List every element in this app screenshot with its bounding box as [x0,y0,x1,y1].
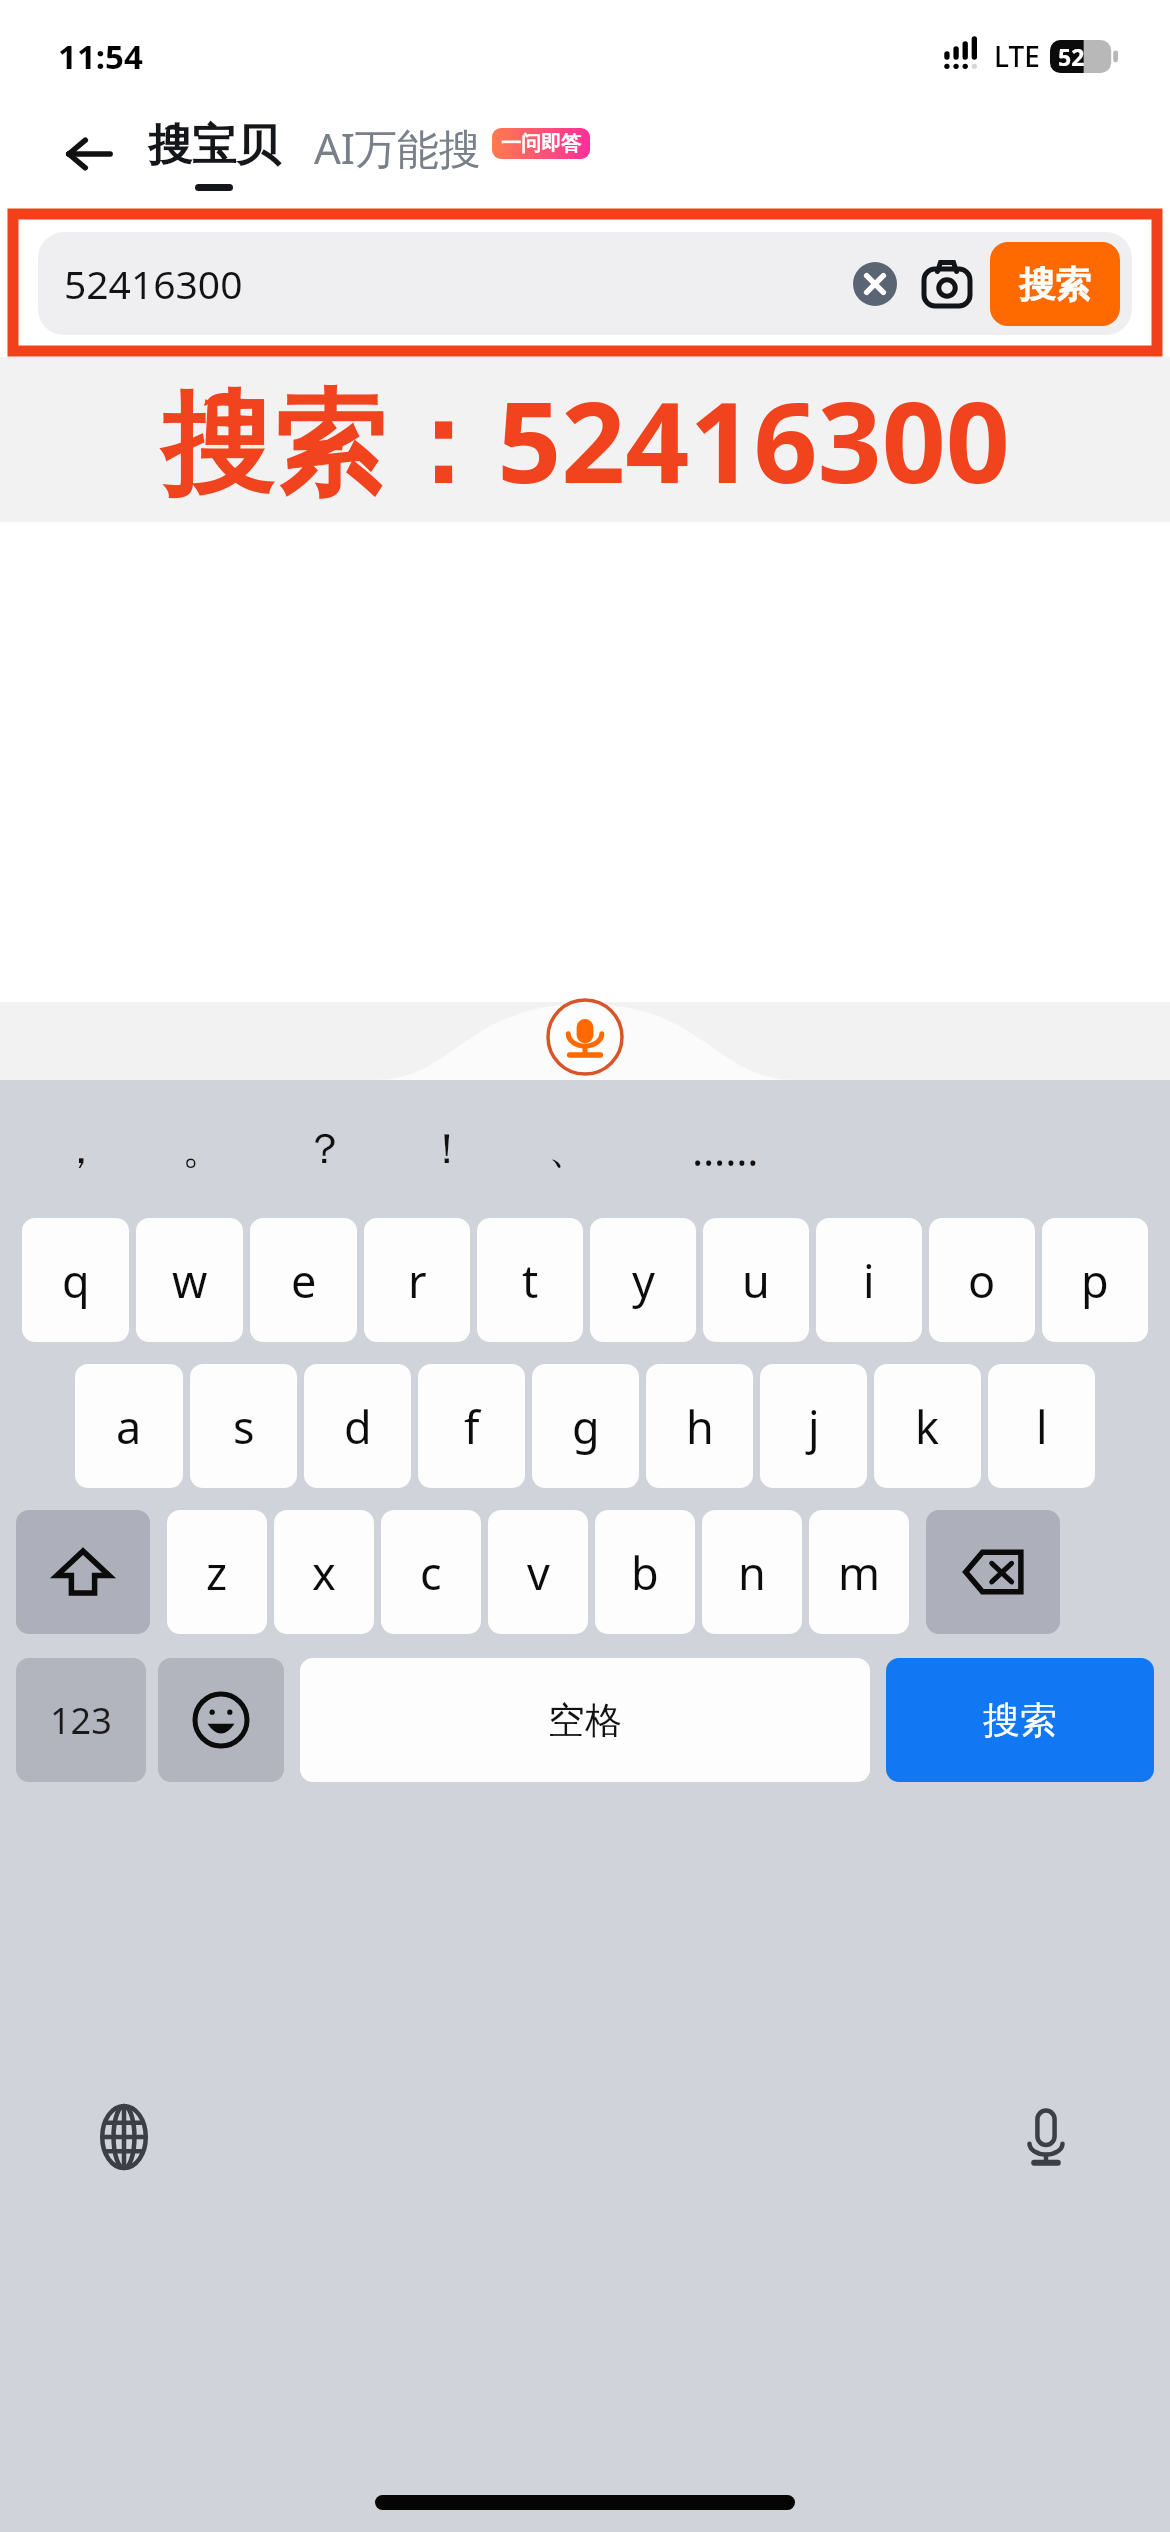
staticText: 123 [50,1696,112,1745]
button[interactable]: Emoji [158,1658,284,1782]
button[interactable]: Backspace [926,1510,1060,1634]
staticText: z [206,1542,228,1603]
button[interactable]: s [190,1364,297,1488]
button[interactable]: j [760,1364,867,1488]
button[interactable]: a [75,1364,183,1488]
button[interactable]: Switch language [84,2097,164,2177]
staticText: o [968,1250,996,1311]
button[interactable]: x [274,1510,374,1634]
button[interactable]: 空格 [300,1658,870,1782]
staticText: 搜宝贝 [148,118,280,173]
staticText: s [233,1396,255,1457]
button[interactable]: Shift [16,1510,150,1634]
button[interactable]: 搜索 [990,242,1120,326]
staticText: 、 [548,1123,590,1176]
staticText: 52 [1058,41,1085,72]
staticText: k [915,1396,940,1457]
button[interactable]: t [477,1218,583,1342]
staticText: 搜索 [983,1697,1057,1744]
button[interactable]: k [874,1364,981,1488]
staticText: y [632,1250,655,1311]
button[interactable]: m [809,1510,909,1634]
staticText: ， [60,1123,102,1176]
button[interactable]: l [988,1364,1095,1488]
button[interactable]: q [22,1218,129,1342]
button[interactable]: 一问即答 [501,131,581,156]
button[interactable]: b [595,1510,695,1634]
staticText: ！ [426,1123,468,1176]
button[interactable]: e [250,1218,357,1342]
staticText: 。 [182,1123,224,1176]
button[interactable]: ， [20,1080,142,1218]
button[interactable]: n [702,1510,802,1634]
button[interactable]: 123 [16,1658,146,1782]
staticText: l [1036,1396,1048,1457]
staticText: i [863,1250,875,1311]
staticText: 52416300 [64,257,848,310]
button[interactable]: Voice search [537,998,633,1076]
staticText: e [291,1250,317,1311]
button[interactable]: h [646,1364,753,1488]
staticText: 搜索：52416300 [161,363,1010,516]
staticText: j [808,1396,820,1457]
staticText: p [1081,1250,1109,1311]
staticText: ？ [304,1123,346,1176]
button[interactable]: f [418,1364,525,1488]
staticText: a [116,1396,142,1457]
staticText: v [527,1542,550,1603]
button[interactable]: Back [52,117,126,191]
staticText: 11:54 [58,34,143,79]
staticText: …… [692,1121,759,1178]
button[interactable]: 搜宝贝 [148,118,280,173]
button[interactable]: i [816,1218,922,1342]
staticText: g [572,1396,600,1457]
button[interactable]: 。 [142,1080,264,1218]
button[interactable]: Clear text [848,257,902,311]
button[interactable]: p [1042,1218,1148,1342]
staticText: 空格 [548,1697,622,1744]
staticText: d [344,1396,372,1457]
button[interactable]: Dictation [1006,2097,1086,2177]
button[interactable]: r [364,1218,470,1342]
staticText: h [686,1396,714,1457]
button[interactable]: AI万能搜 [314,119,482,190]
staticText: x [312,1542,336,1603]
button[interactable]: o [929,1218,1035,1342]
staticText: m [838,1542,881,1603]
staticText: u [742,1250,770,1311]
staticText: b [631,1542,659,1603]
button[interactable]: u [703,1218,809,1342]
staticText: AI万能搜 [314,119,482,176]
staticText: f [464,1396,480,1457]
button[interactable]: w [136,1218,243,1342]
staticText: 一问即答 [501,131,581,156]
button[interactable]: v [488,1510,588,1634]
button[interactable]: Search by image [916,253,978,315]
button[interactable]: ！ [386,1080,508,1218]
staticText: c [420,1542,442,1603]
button[interactable]: 、 [508,1080,630,1218]
button[interactable]: d [304,1364,411,1488]
button[interactable]: …… [630,1080,820,1218]
button[interactable]: z [167,1510,267,1634]
staticText: q [62,1250,90,1311]
button[interactable]: ？ [264,1080,386,1218]
staticText: r [408,1250,427,1311]
staticText: t [522,1250,539,1311]
button[interactable]: 搜索 [886,1658,1154,1782]
staticText: LTE [994,37,1040,75]
staticText: w [172,1250,208,1311]
staticText: 搜索 [1019,262,1091,307]
button[interactable]: c [381,1510,481,1634]
button[interactable]: 52416300 [38,232,1132,335]
button[interactable]: y [590,1218,696,1342]
staticText: n [738,1542,766,1603]
button[interactable]: g [532,1364,639,1488]
